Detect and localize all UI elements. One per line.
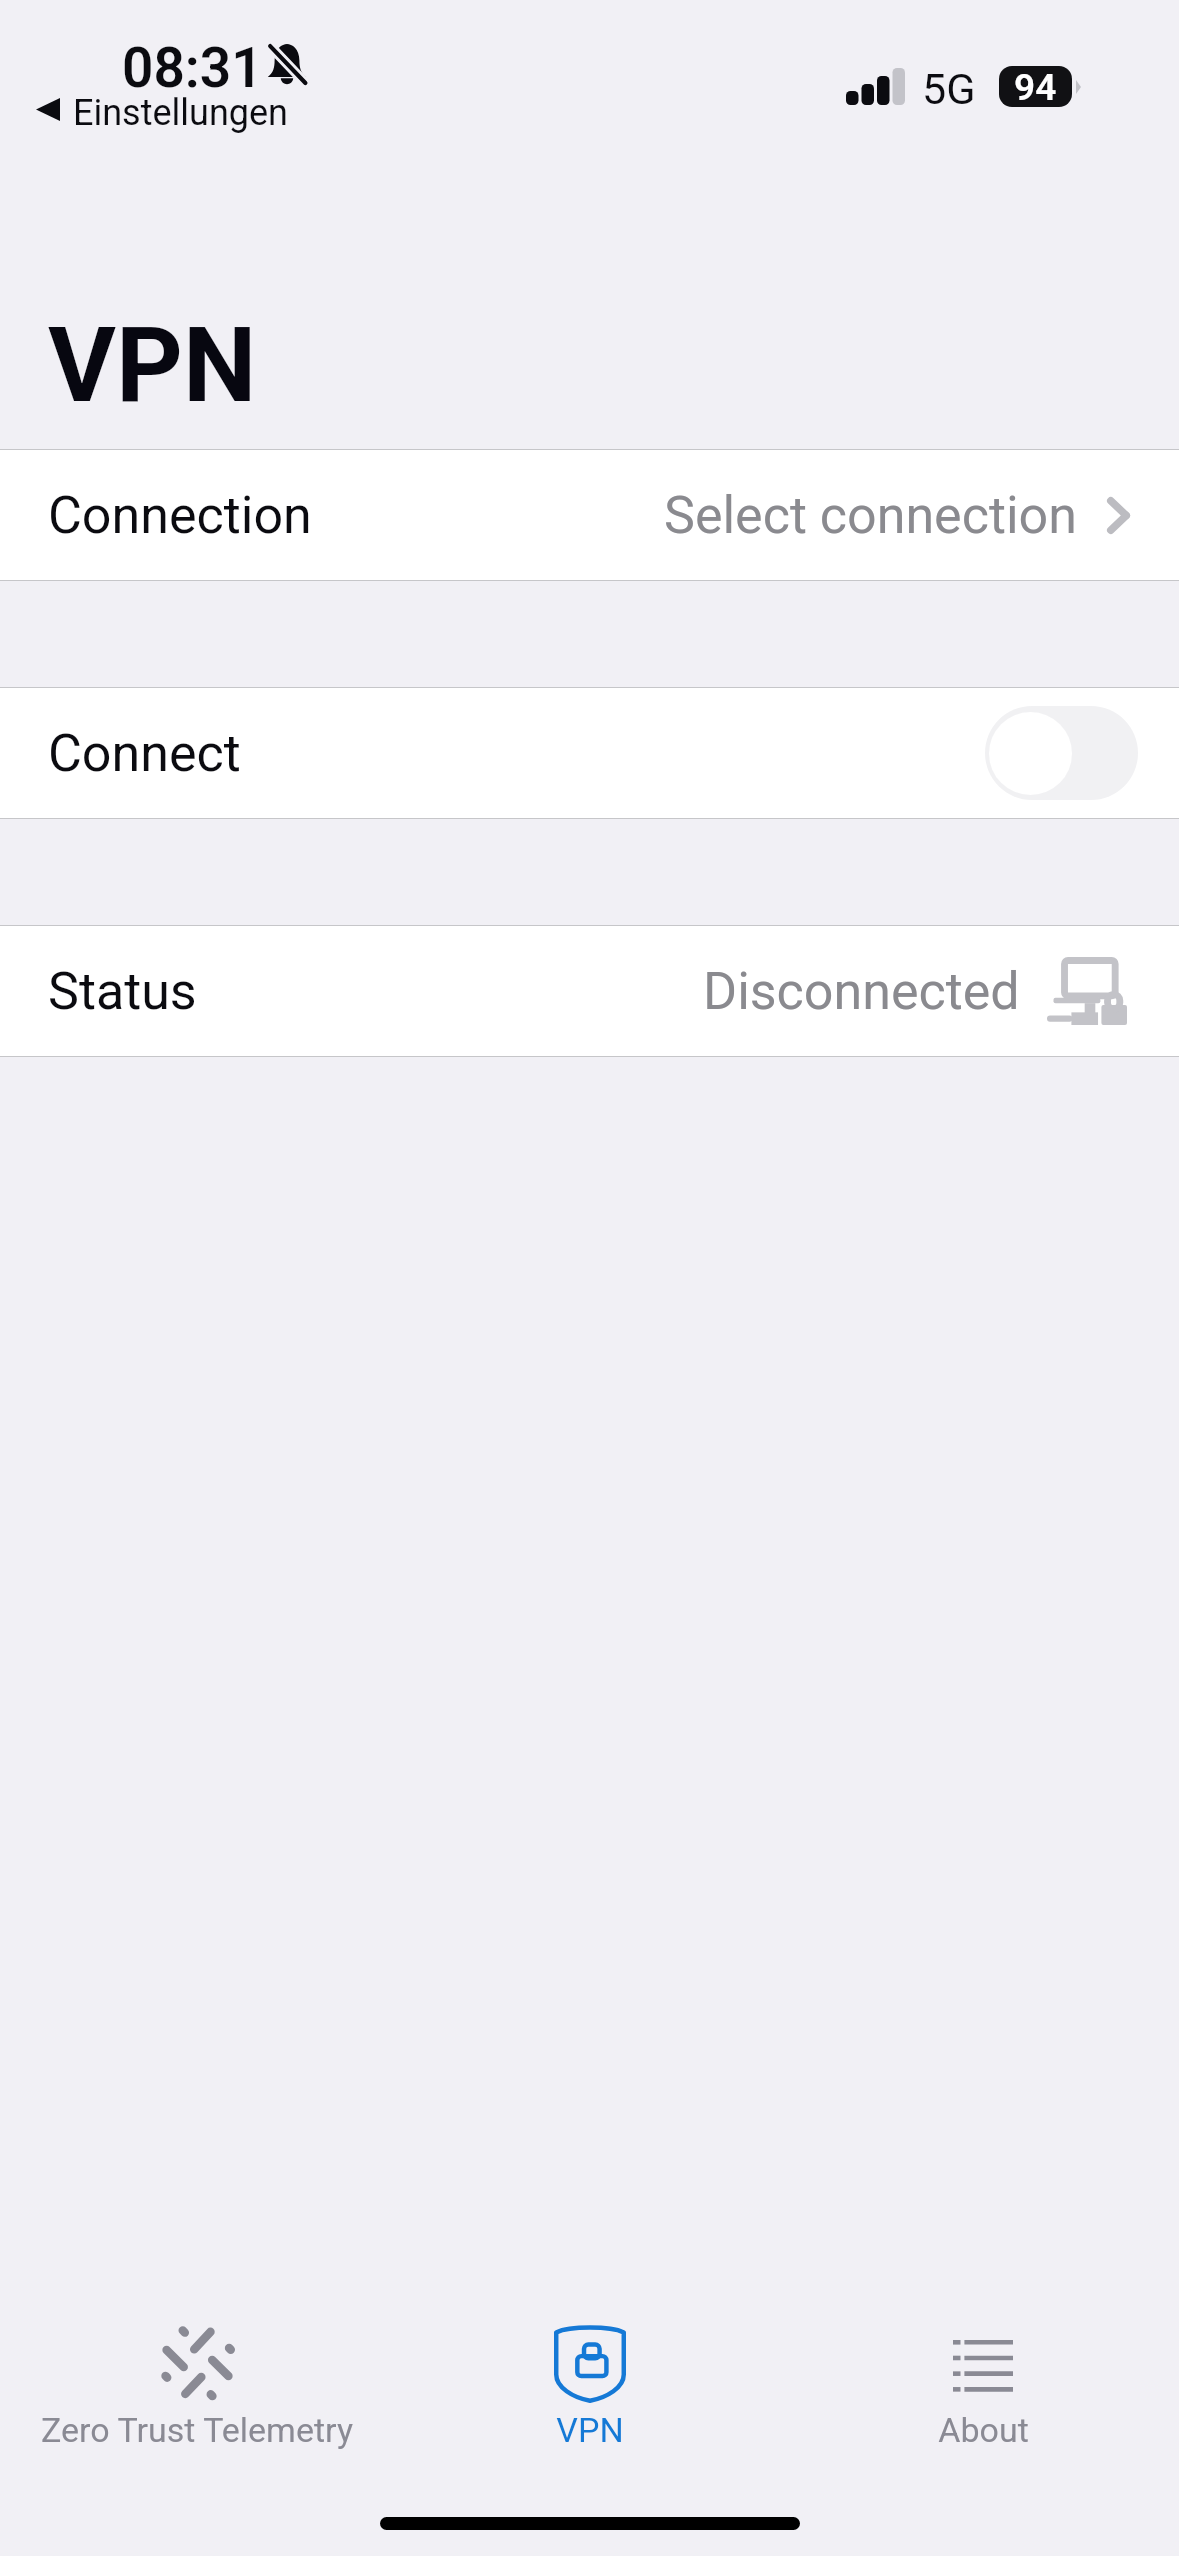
staticText: About [938, 2410, 1029, 2450]
staticText: VPN [556, 2410, 624, 2450]
button[interactable]: Zero Trust Telemetry [27, 2300, 367, 2460]
staticText: Connection [48, 485, 312, 546]
staticText: Zero Trust Telemetry [41, 2410, 353, 2450]
button[interactable]: Status [0, 926, 1179, 1056]
other: Back to Einstellungen [36, 98, 60, 121]
button[interactable]: VPN [420, 2300, 760, 2460]
staticText: Einstellungen [73, 92, 288, 134]
staticText: Connect [48, 723, 241, 784]
button[interactable]: Connection [0, 450, 1179, 580]
staticText: Status [48, 961, 197, 1022]
button[interactable]: Connect [0, 688, 1179, 818]
staticText: VPN [48, 305, 257, 427]
staticText: Select connection [664, 485, 1077, 546]
staticText: Disconnected [703, 961, 1020, 1022]
button[interactable]: Connect toggle, off [985, 706, 1138, 800]
staticText: 5G [922, 64, 976, 114]
button[interactable]: About [813, 2300, 1153, 2460]
button[interactable]: Back to Einstellungen [36, 92, 288, 134]
other: Open connection picker [1107, 497, 1130, 534]
staticText: 94 [1014, 66, 1057, 107]
staticText: 08:31 [122, 36, 263, 100]
